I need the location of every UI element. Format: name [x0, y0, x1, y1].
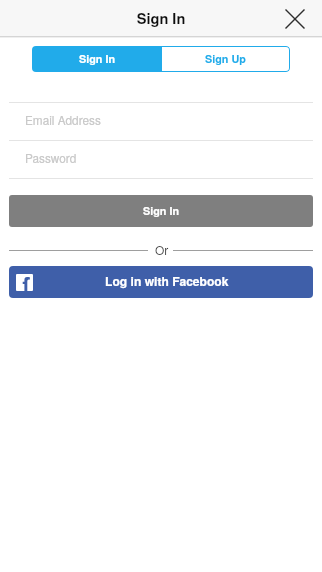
- button[interactable]: Sign In: [32, 46, 161, 72]
- staticText: Email Address: [25, 111, 101, 128]
- staticText: Or: [155, 241, 169, 255]
- staticText: Password: [25, 149, 77, 166]
- staticText: Sign Up: [205, 51, 246, 66]
- staticText: Sign In: [143, 203, 179, 218]
- button[interactable]: Sign Up: [161, 46, 290, 72]
- button[interactable]: Log in with Facebook: [9, 266, 313, 298]
- staticText: Sign In: [79, 51, 115, 66]
- staticText: Sign In: [0, 8, 322, 29]
- staticText: Log in with Facebook: [105, 272, 229, 289]
- button[interactable]: Close: [277, 1, 313, 37]
- button[interactable]: Sign In: [9, 195, 313, 227]
